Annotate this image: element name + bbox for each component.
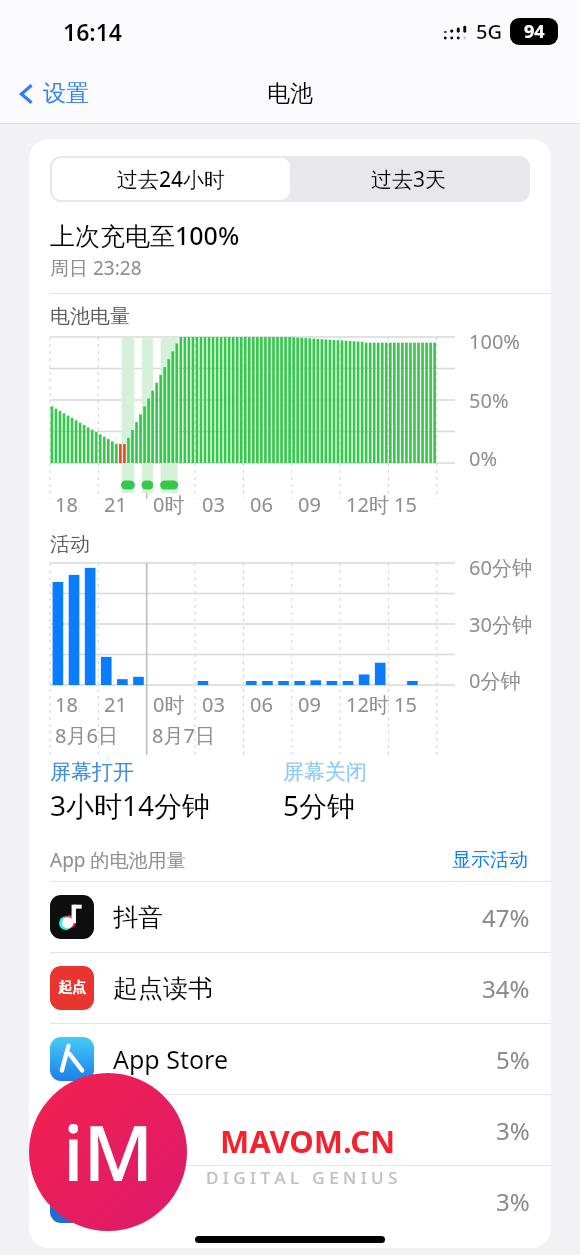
button[interactable]: 起点 [29, 952, 551, 1023]
staticText: 抖音 [113, 902, 163, 933]
staticText: iM [63, 1100, 154, 1204]
staticText: 周日 23:28 [50, 255, 142, 281]
staticText: 12时 [346, 691, 389, 718]
staticText: 过去24小时 [117, 165, 226, 194]
staticText: 06 [250, 491, 273, 518]
button[interactable]: 显示活动 [450, 846, 530, 874]
staticText: 21 [104, 691, 127, 718]
staticText: 5% [496, 1043, 530, 1076]
staticText: 过去3天 [371, 165, 447, 194]
other: Cellular signal [442, 22, 468, 42]
staticText: 上次充电至100% [50, 218, 240, 252]
staticText: 5G [476, 18, 502, 45]
staticText: 06 [250, 691, 273, 718]
staticText: App 的电池用量 [50, 847, 186, 873]
button[interactable]: App Store [29, 1023, 551, 1094]
staticText: 0% [469, 445, 498, 472]
staticText: 47% [482, 901, 530, 934]
staticText: 3小时14分钟 [50, 786, 211, 824]
staticText: 18 [55, 491, 78, 518]
staticText: 15 [394, 491, 417, 518]
staticText: MAVOM.CN [220, 1120, 396, 1162]
staticText: 34% [482, 972, 530, 1005]
staticText: 显示活动 [452, 848, 528, 872]
staticText: 电池 [267, 79, 313, 108]
staticText: 21 [104, 491, 127, 518]
staticText: 30分钟 [469, 611, 532, 638]
staticText: 12时 [346, 491, 389, 518]
staticText: 财富 [113, 1186, 163, 1217]
staticText: 屏幕打开 [50, 759, 134, 785]
staticText: 09 [298, 691, 321, 718]
button[interactable]: 微信 [29, 1094, 551, 1165]
staticText: 15 [394, 691, 417, 718]
staticText: 0时 [153, 491, 185, 518]
staticText: 09 [298, 491, 321, 518]
staticText: 0分钟 [469, 667, 521, 694]
staticText: 100% [469, 328, 520, 355]
button[interactable]: 过去3天 [290, 158, 528, 200]
staticText: 活动 [50, 532, 90, 557]
staticText: 0时 [153, 691, 185, 718]
staticText: 8月7日 [152, 722, 215, 749]
staticText: 微信 [113, 1115, 163, 1146]
staticText: 03 [202, 491, 225, 518]
button[interactable]: 过去24小时 [52, 158, 290, 200]
staticText: 8月6日 [55, 722, 118, 749]
staticText: 3% [496, 1185, 530, 1218]
button[interactable]: 抖音 [29, 881, 551, 952]
button[interactable]: 财富 [29, 1165, 551, 1236]
staticText: App Store [113, 1042, 229, 1076]
staticText: 5分钟 [283, 786, 356, 824]
staticText: 3% [496, 1114, 530, 1147]
staticText: 03 [202, 691, 225, 718]
button[interactable]: 设置 [12, 73, 95, 114]
staticText: 起点 [58, 979, 86, 997]
staticText: 94 [524, 19, 545, 44]
staticText: D I G I T A L G E N I U S [206, 1166, 398, 1189]
staticText: 50% [469, 387, 509, 414]
staticText: 设置 [43, 79, 89, 108]
staticText: 18 [55, 691, 78, 718]
staticText: 电池电量 [50, 304, 130, 329]
staticText: 屏幕关闭 [283, 759, 367, 785]
staticText: 60分钟 [469, 554, 532, 581]
staticText: 16:14 [63, 16, 122, 47]
staticText: 起点读书 [113, 973, 213, 1004]
